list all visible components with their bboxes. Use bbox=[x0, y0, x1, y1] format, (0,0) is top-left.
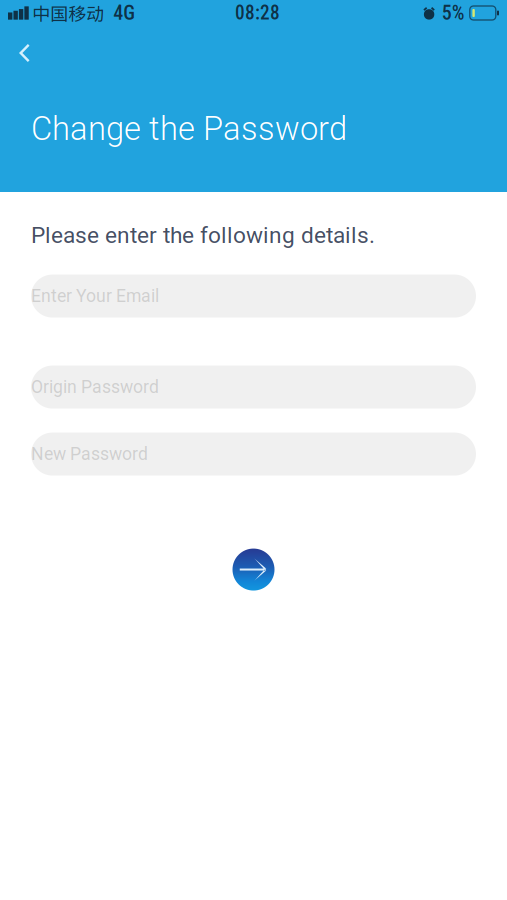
button[interactable]: Enter Your Email bbox=[31, 275, 476, 318]
staticText: Change the Password bbox=[31, 110, 347, 148]
staticText: Origin Password bbox=[31, 377, 159, 397]
button[interactable]: Submit bbox=[232, 549, 274, 591]
staticText: Enter Your Email bbox=[31, 286, 159, 306]
button[interactable]: Back bbox=[0, 26, 60, 78]
staticText: 08:28 bbox=[235, 2, 280, 24]
staticText: 4G bbox=[113, 1, 135, 25]
staticText: 中国移动 bbox=[32, 0, 104, 26]
button[interactable]: New Password bbox=[31, 433, 476, 476]
staticText: New Password bbox=[31, 444, 148, 464]
staticText: 5% bbox=[442, 1, 465, 25]
staticText: Please enter the following details. bbox=[31, 222, 375, 249]
button[interactable]: Origin Password bbox=[31, 366, 476, 409]
